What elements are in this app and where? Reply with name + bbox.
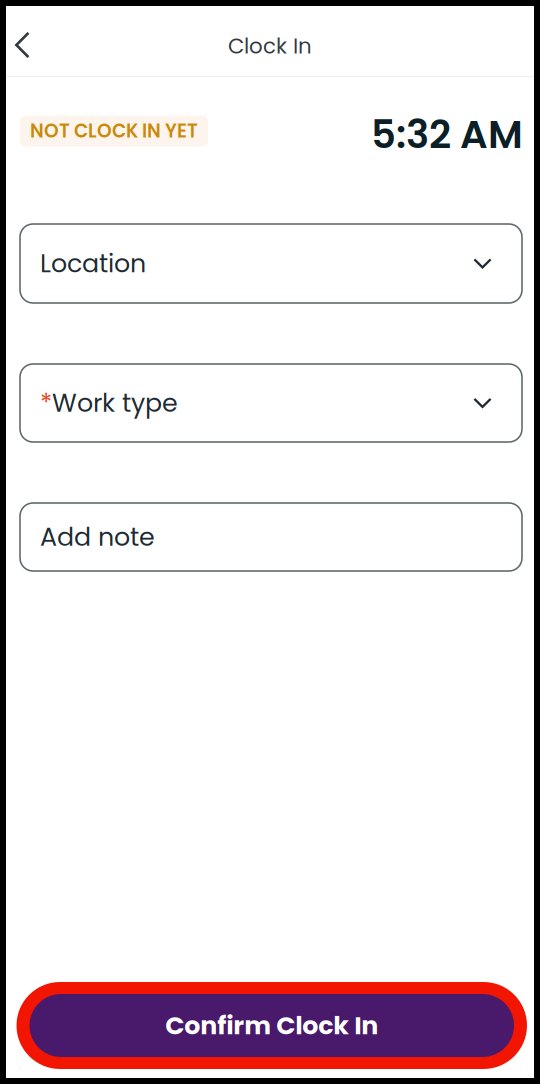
staticText: Add note bbox=[40, 519, 155, 555]
staticText: Confirm Clock In bbox=[165, 1008, 378, 1043]
staticText: 5:32 AM bbox=[371, 107, 523, 161]
staticText: Work type bbox=[52, 385, 178, 421]
button[interactable]: * bbox=[20, 364, 522, 442]
button[interactable]: Add note bbox=[20, 503, 522, 571]
button[interactable]: Back bbox=[6, 12, 46, 69]
staticText: Clock In bbox=[228, 31, 312, 61]
button[interactable]: Confirm Clock In bbox=[16, 982, 527, 1069]
button[interactable]: Location bbox=[20, 224, 522, 303]
staticText: NOT CLOCK IN YET bbox=[30, 118, 198, 144]
staticText: * bbox=[40, 385, 52, 421]
staticText: Location bbox=[40, 246, 146, 281]
